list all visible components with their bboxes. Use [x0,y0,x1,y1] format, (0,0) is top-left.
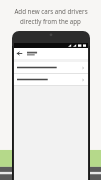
staticText: Add new cars and drivers [14,7,88,15]
button[interactable]: List item [14,74,88,85]
button[interactable]: Back [16,50,23,57]
staticText: directly from the app [20,17,81,25]
button[interactable]: List item [14,62,88,73]
